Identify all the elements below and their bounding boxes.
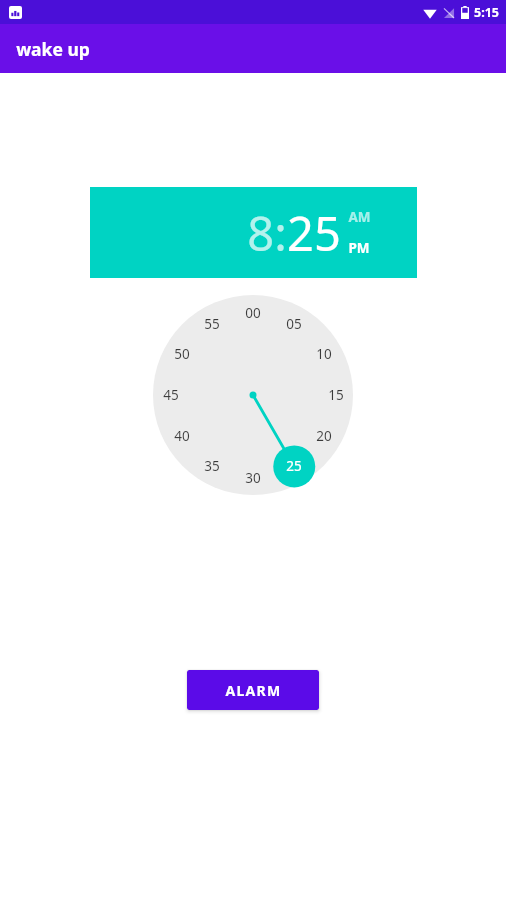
button[interactable]: AM <box>348 208 371 226</box>
button[interactable]: PM <box>348 239 370 257</box>
staticText: 20 <box>316 427 332 445</box>
staticText: 40 <box>174 427 190 445</box>
staticText: 5:15 <box>474 4 499 21</box>
staticText: 10 <box>316 345 332 363</box>
staticText: 25 <box>286 457 302 475</box>
staticText: 15 <box>328 386 344 404</box>
staticText: wake up <box>16 37 90 61</box>
button[interactable]: 25 <box>287 201 341 265</box>
staticText: 05 <box>286 315 302 333</box>
staticText: 45 <box>163 386 179 404</box>
button[interactable]: 8: <box>247 201 287 265</box>
staticText: ALARM <box>225 681 282 700</box>
button[interactable]: ALARM <box>187 670 319 710</box>
staticText: 55 <box>204 315 220 333</box>
staticText: 50 <box>174 345 190 363</box>
staticText: 00 <box>245 304 261 322</box>
button[interactable]: Minute picker <box>153 295 353 495</box>
staticText: 30 <box>245 469 261 487</box>
staticText: 35 <box>204 457 220 475</box>
